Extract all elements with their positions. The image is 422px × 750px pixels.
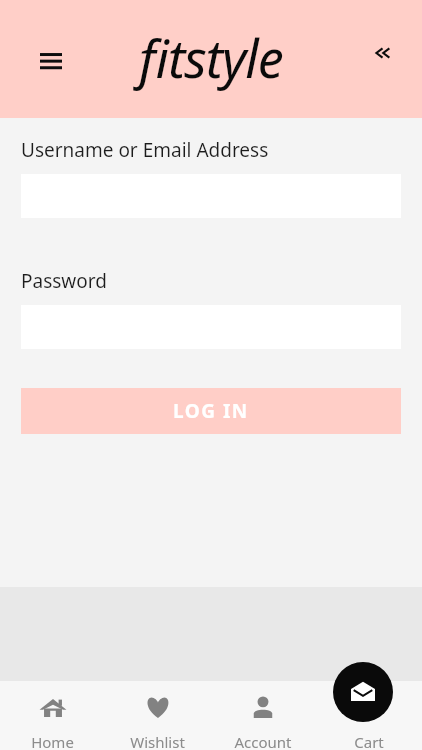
button[interactable]: Cart [316, 681, 422, 750]
button[interactable]: Wishlist [105, 681, 210, 750]
staticText: Wishlist [130, 732, 185, 750]
staticText: LOG IN [173, 398, 249, 424]
staticText: Password [21, 268, 422, 294]
staticText: Cart [354, 732, 384, 750]
staticText: fitstyle [139, 22, 283, 93]
button[interactable]: Account [210, 681, 316, 750]
button[interactable]: Home [0, 681, 105, 750]
staticText: Account [234, 732, 292, 750]
button[interactable]: Back [360, 33, 400, 73]
button[interactable]: Messages [333, 662, 393, 722]
button[interactable]: Menu [30, 38, 72, 80]
button[interactable]: LOG IN [21, 388, 401, 434]
staticText: Username or Email Address [21, 137, 422, 163]
staticText: Home [31, 732, 74, 750]
